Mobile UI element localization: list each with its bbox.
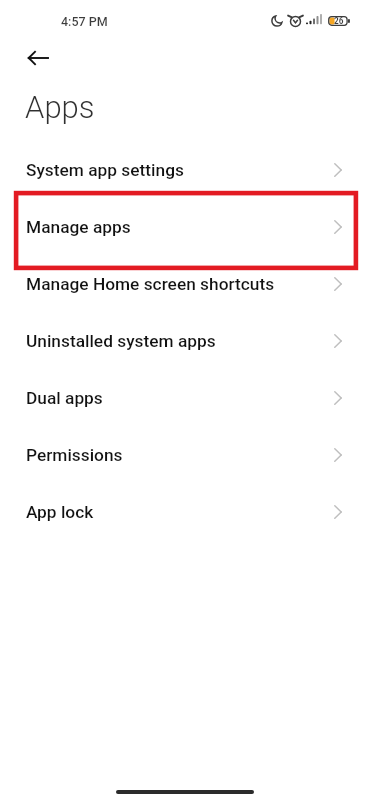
button[interactable]: Uninstalled system apps	[0, 312, 369, 369]
staticText: Manage apps	[26, 217, 131, 237]
staticText: Apps	[25, 89, 95, 125]
staticText: Manage Home screen shortcuts	[26, 274, 275, 294]
staticText: App lock	[26, 502, 94, 522]
button[interactable]: Dual apps	[0, 369, 369, 426]
button[interactable]: Back	[21, 41, 55, 75]
button[interactable]: Permissions	[0, 426, 369, 483]
button[interactable]: System app settings	[0, 141, 369, 198]
staticText: 26	[334, 16, 344, 26]
staticText: Dual apps	[26, 388, 103, 408]
staticText: 4:57 PM	[61, 14, 108, 29]
staticText: Permissions	[26, 445, 123, 465]
button[interactable]: Manage Home screen shortcuts	[0, 255, 369, 312]
staticText: System app settings	[26, 160, 184, 180]
button[interactable]: App lock	[0, 483, 369, 540]
button[interactable]: Manage apps	[0, 198, 369, 255]
staticText: Uninstalled system apps	[26, 331, 216, 351]
